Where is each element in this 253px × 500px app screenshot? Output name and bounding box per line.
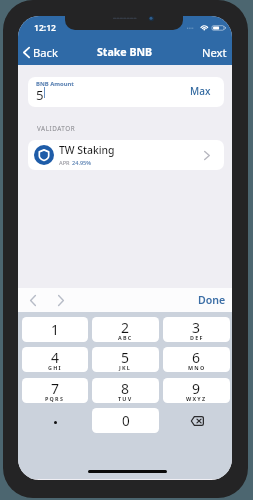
button[interactable]: Next field bbox=[50, 290, 72, 310]
staticText: 0 bbox=[122, 412, 130, 430]
staticText: Stake BNB bbox=[97, 45, 153, 59]
staticText: 2 bbox=[121, 318, 130, 337]
staticText: APR bbox=[59, 159, 72, 167]
staticText: PQRS bbox=[45, 395, 65, 402]
staticText: Next bbox=[202, 45, 227, 60]
staticText: 3 bbox=[192, 318, 201, 337]
button[interactable]: 0 bbox=[92, 408, 159, 433]
staticText: TW Staking bbox=[59, 143, 115, 157]
staticText: MNO bbox=[188, 364, 206, 371]
button[interactable]: 2 bbox=[92, 317, 159, 342]
button[interactable]: 5 bbox=[92, 347, 159, 372]
staticText: ABC bbox=[118, 334, 133, 341]
staticText: GHI bbox=[48, 364, 62, 371]
staticText: 12:12 bbox=[34, 22, 57, 34]
button[interactable]: Previous field bbox=[22, 290, 44, 310]
button[interactable] bbox=[22, 408, 88, 433]
button[interactable]: 9 bbox=[163, 378, 230, 403]
button[interactable]: Done bbox=[196, 288, 228, 312]
staticText: Max bbox=[190, 84, 211, 98]
staticText: 24.95% bbox=[72, 159, 92, 167]
button[interactable]: Next bbox=[198, 40, 231, 64]
staticText: 1 bbox=[51, 320, 60, 339]
button[interactable]: 8 bbox=[92, 378, 159, 403]
button[interactable]: 1 bbox=[22, 317, 88, 342]
button[interactable]: 7 bbox=[22, 378, 88, 403]
staticText: WXYZ bbox=[186, 395, 207, 402]
staticText: VALIDATOR bbox=[37, 124, 76, 133]
staticText: 6 bbox=[192, 348, 201, 367]
button[interactable]: Back bbox=[23, 40, 63, 64]
staticText: 8 bbox=[121, 379, 130, 398]
button[interactable]: TW Staking bbox=[28, 140, 224, 170]
staticText: 5 bbox=[121, 348, 130, 367]
staticText: JKL bbox=[119, 364, 132, 371]
staticText: BNB Amount bbox=[36, 80, 74, 88]
staticText: 5 bbox=[36, 86, 44, 104]
staticText: Back bbox=[33, 45, 58, 60]
button[interactable]: 4 bbox=[22, 347, 88, 372]
staticText: 7 bbox=[51, 379, 60, 398]
staticText: DEF bbox=[190, 334, 204, 341]
staticText: TUV bbox=[118, 395, 133, 402]
button[interactable]: Max bbox=[190, 84, 211, 98]
staticText: Done bbox=[198, 293, 226, 307]
button[interactable]: 3 bbox=[163, 317, 230, 342]
button[interactable]: Delete bbox=[163, 408, 230, 433]
button[interactable]: 6 bbox=[163, 347, 230, 372]
button[interactable]: BNB Amount bbox=[28, 77, 224, 107]
staticText: 9 bbox=[192, 379, 201, 398]
staticText: 4 bbox=[51, 348, 60, 367]
